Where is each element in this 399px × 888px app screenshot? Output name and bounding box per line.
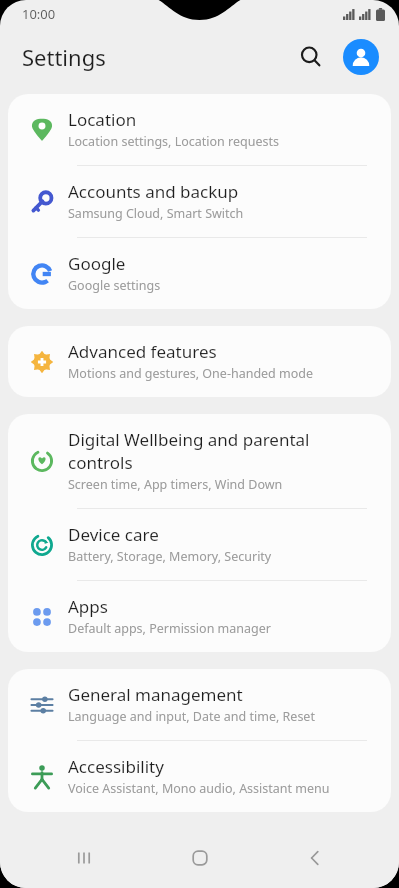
button[interactable]: Digital Wellbeing and parental controls [8,414,391,508]
staticText: Language and input, Date and time, Reset [68,708,315,725]
staticText: Location settings, Location requests [68,133,280,150]
staticText: Settings [22,42,106,72]
staticText: Samsung Cloud, Smart Switch [68,205,244,222]
button[interactable]: Profile [341,37,381,77]
button[interactable]: Advanced features [8,326,391,397]
staticText: Location [68,108,137,131]
staticText: Advanced features [68,340,217,363]
staticText: Motions and gestures, One-handed mode [68,365,314,382]
button[interactable]: Device care [8,509,391,580]
button[interactable]: Back [283,828,347,888]
staticText: Google settings [68,277,161,294]
button[interactable]: Search [291,37,331,77]
button[interactable]: Google [8,238,391,309]
staticText: General management [68,683,243,706]
staticText: Apps [68,595,108,618]
staticText: Battery, Storage, Memory, Security [68,548,272,565]
button[interactable]: Accounts and backup [8,166,391,237]
button[interactable]: Location [8,94,391,165]
button[interactable]: Recents [52,828,116,888]
button[interactable]: Home [168,828,232,888]
staticText: Voice Assistant, Mono audio, Assistant m… [68,780,330,797]
staticText: Digital Wellbeing and parental controls [68,428,371,474]
button[interactable]: Apps [8,581,391,652]
staticText: Device care [68,523,159,546]
staticText: Default apps, Permission manager [68,620,271,637]
button[interactable]: General management [8,669,391,740]
staticText: Google [68,252,126,275]
staticText: Accessibility [68,755,164,778]
staticText: Screen time, App timers, Wind Down [68,476,283,493]
staticText: Accounts and backup [68,180,239,203]
button[interactable]: Accessibility [8,741,391,812]
staticText: 10:00 [22,5,56,23]
